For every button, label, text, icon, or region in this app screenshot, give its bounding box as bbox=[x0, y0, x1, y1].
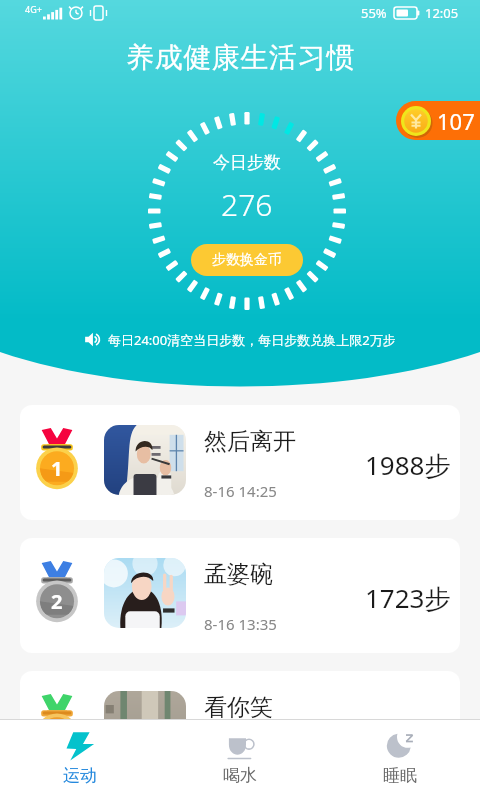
staticText: 1 bbox=[51, 455, 63, 482]
staticText: 4G+ bbox=[25, 3, 42, 15]
button[interactable]: 2 bbox=[20, 538, 460, 653]
staticText: 步数换金币 bbox=[212, 251, 282, 269]
button[interactable]: 1 bbox=[20, 405, 460, 520]
staticText: 1988步 bbox=[365, 447, 451, 483]
staticText: 看你笑 bbox=[204, 693, 273, 722]
staticText: 养成健康生活习惯 bbox=[126, 40, 355, 75]
staticText: 12:05 bbox=[425, 4, 459, 22]
staticText: 每日24:00清空当日步数，每日步数兑换上限2万步 bbox=[108, 331, 396, 349]
button[interactable]: 喝水 bbox=[160, 720, 320, 800]
staticText: 1723步 bbox=[365, 580, 451, 616]
staticText: 2 bbox=[51, 588, 63, 615]
staticText: 然后离开 bbox=[204, 427, 296, 456]
button[interactable]: Coins 107 bbox=[396, 101, 480, 140]
staticText: 孟婆碗 bbox=[204, 560, 273, 589]
staticText: 喝水 bbox=[223, 765, 257, 786]
staticText: 今日步数 bbox=[213, 152, 281, 173]
staticText: 运动 bbox=[63, 765, 97, 786]
staticText: 8-16 13:35 bbox=[204, 614, 277, 634]
staticText: 1502步 bbox=[365, 713, 451, 749]
staticText: 276 bbox=[221, 184, 273, 225]
staticText: 8-16 12:10 bbox=[204, 747, 277, 767]
button[interactable]: 睡眠 bbox=[320, 720, 480, 800]
staticText: 55% bbox=[361, 4, 387, 22]
button[interactable]: 步数换金币 bbox=[191, 244, 303, 276]
button[interactable]: 3 bbox=[20, 671, 460, 786]
staticText: 睡眠 bbox=[383, 765, 417, 786]
staticText: 107 bbox=[437, 106, 475, 136]
staticText: 8-16 14:25 bbox=[204, 481, 277, 501]
button[interactable]: 运动 bbox=[0, 720, 160, 800]
